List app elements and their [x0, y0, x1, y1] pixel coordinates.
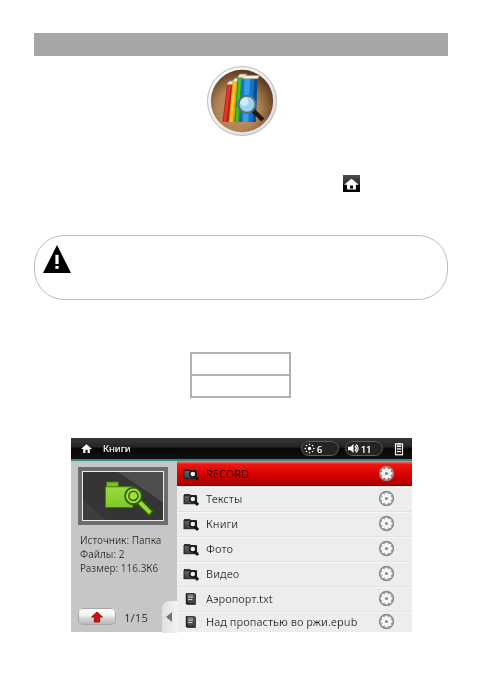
button[interactable]: Item options — [379, 466, 394, 481]
button[interactable]: Item options — [379, 614, 394, 629]
button[interactable]: Аэропорт.txt — [177, 586, 412, 611]
button[interactable]: Видео — [177, 561, 412, 586]
staticText: 6 — [317, 443, 323, 455]
staticText: Аэропорт.txt — [206, 591, 273, 606]
staticText: RECORD — [206, 466, 250, 481]
button[interactable]: Item options — [379, 591, 394, 606]
button[interactable]: Item options — [379, 566, 394, 581]
staticText: Файлы: 2 — [80, 547, 125, 561]
button[interactable]: Home — [343, 175, 360, 192]
staticText: Источник: Папка — [80, 533, 162, 547]
button[interactable]: Над пропастью во ржи.epub — [177, 611, 412, 632]
button[interactable]: Item options — [379, 516, 394, 531]
staticText: 11 — [361, 443, 372, 455]
staticText: Фото — [206, 541, 233, 556]
staticText: Над пропастью во ржи.epub — [206, 614, 358, 629]
staticText: 1/15 — [124, 610, 149, 626]
button[interactable]: Volume — [345, 441, 383, 456]
button[interactable]: Фото — [177, 536, 412, 561]
staticText: Книги — [206, 516, 239, 531]
button[interactable]: Item options — [379, 541, 394, 556]
button[interactable]: Brightness — [301, 441, 339, 456]
button[interactable]: Up one level — [78, 608, 116, 625]
button[interactable]: Collapse panel — [162, 601, 178, 633]
button[interactable]: Home — [81, 443, 92, 454]
button[interactable]: Книги — [177, 511, 412, 536]
staticText: Тексты — [206, 491, 243, 506]
staticText: Книги — [103, 442, 131, 455]
button[interactable]: RECORD — [177, 461, 412, 486]
button[interactable]: Item options — [379, 491, 394, 506]
staticText: Видео — [206, 566, 240, 581]
button[interactable]: Тексты — [177, 486, 412, 511]
staticText: Размер: 116.3К6 — [80, 561, 159, 575]
